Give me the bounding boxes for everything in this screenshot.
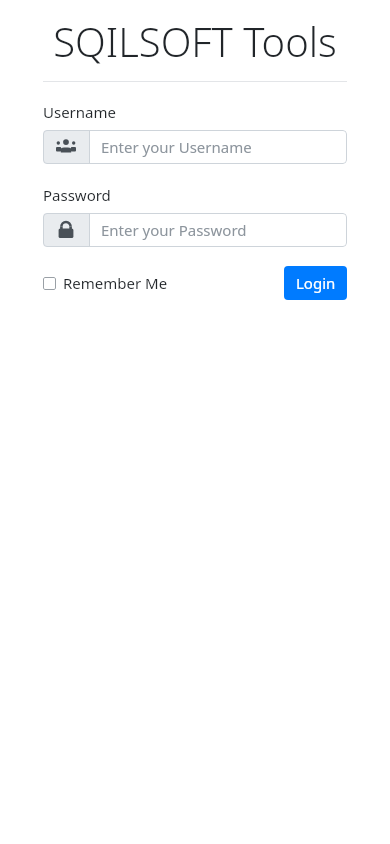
- button[interactable]: Login: [284, 266, 347, 300]
- button[interactable]: Remember Me: [43, 273, 174, 293]
- button[interactable]: Password: [43, 213, 347, 247]
- staticText: SQILSOFT Tools: [43, 14, 347, 68]
- staticText: Login: [296, 273, 336, 293]
- staticText: Enter your Username: [101, 137, 252, 157]
- button[interactable]: Username: [43, 130, 347, 164]
- staticText: Password: [43, 185, 111, 205]
- staticText: Enter your Password: [101, 220, 247, 240]
- staticText: Username: [43, 102, 116, 122]
- staticText: Remember Me: [63, 273, 168, 293]
- other: Password: [43, 213, 89, 247]
- other: Username: [43, 130, 89, 164]
